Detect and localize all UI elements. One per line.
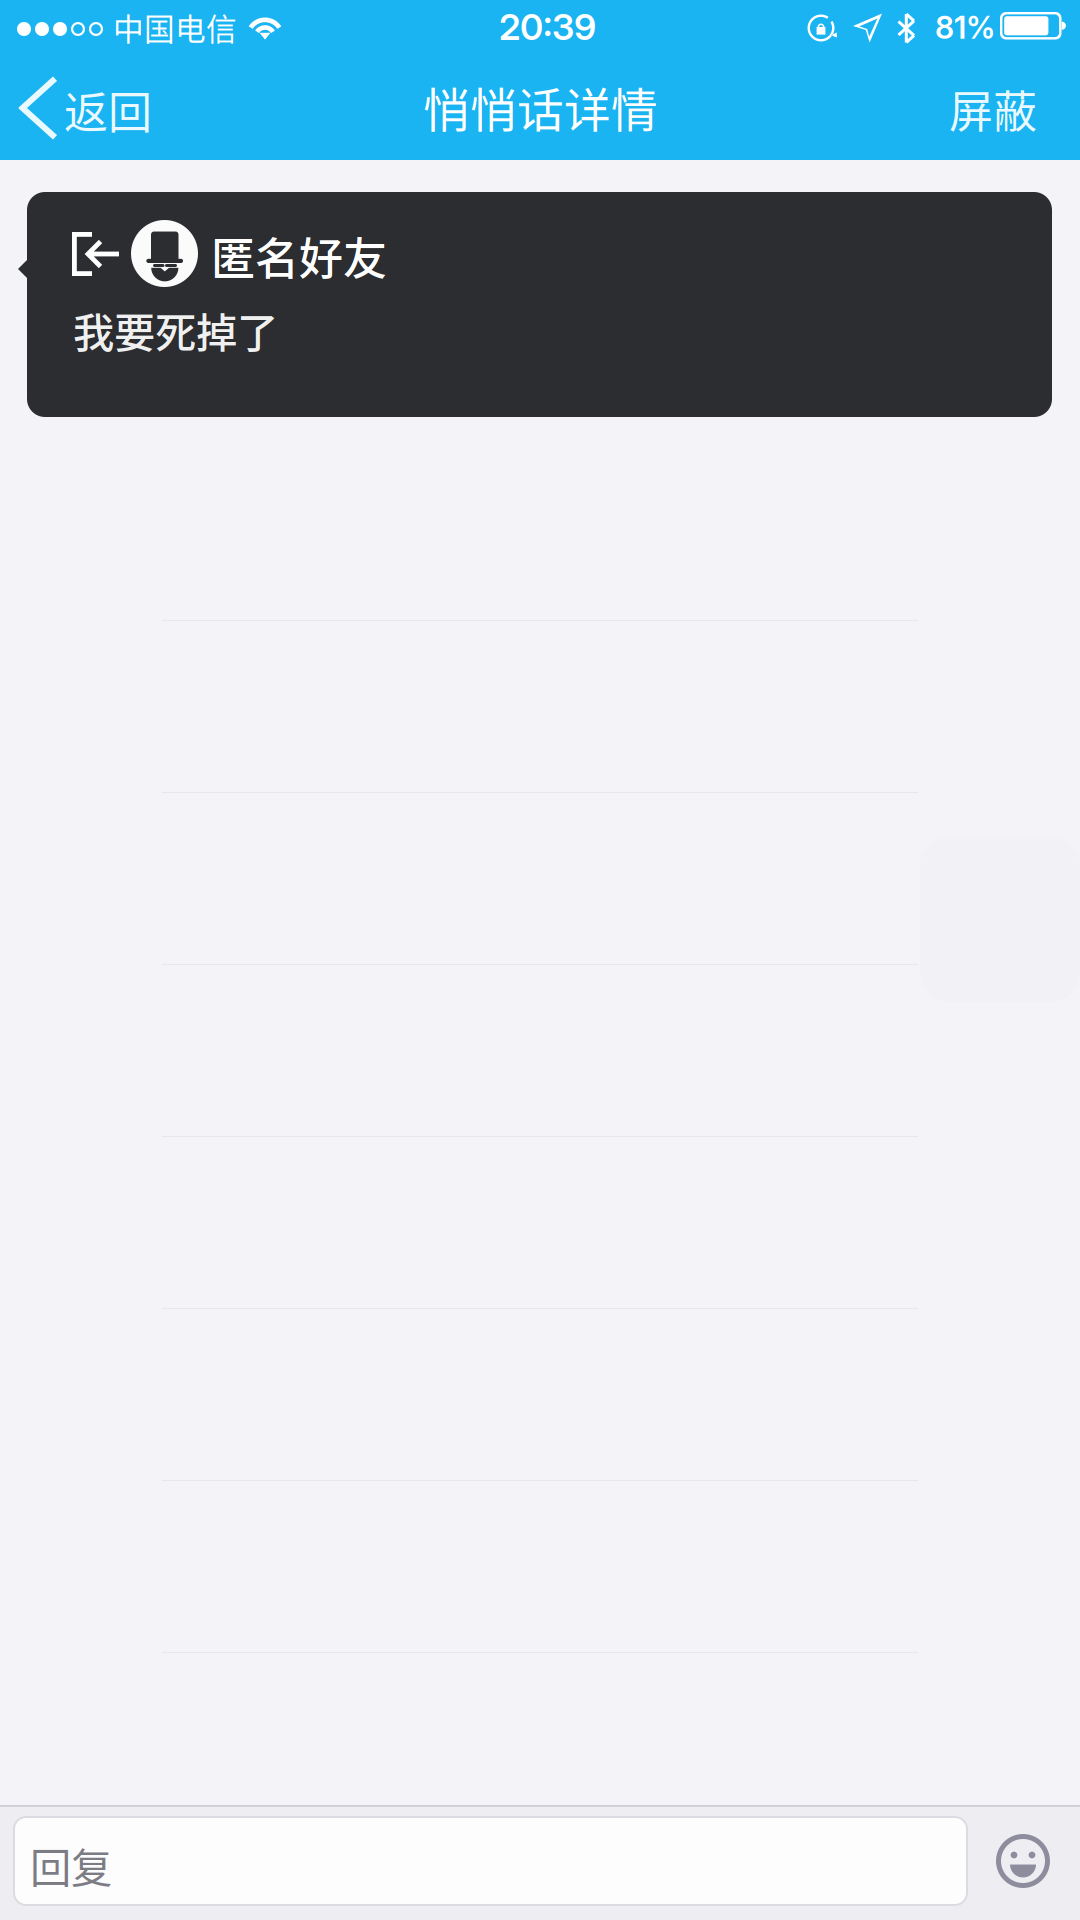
button[interactable]: 回复 [14, 1817, 967, 1905]
staticText: 返回 [64, 78, 152, 142]
staticText: 悄悄话详情 [423, 73, 658, 141]
staticText: 20:39 [499, 5, 596, 49]
button[interactable]: 屏蔽 [900, 58, 1060, 158]
staticText: 回复 [30, 1835, 112, 1895]
staticText: 81% [935, 9, 995, 46]
button[interactable]: Emoji [970, 1817, 1076, 1905]
button[interactable]: 返回 [0, 58, 190, 158]
staticText: 匿名好友 [211, 224, 387, 288]
staticText: 我要死掉了 [73, 300, 278, 360]
staticText: 中国电信 [113, 5, 237, 49]
staticText: 屏蔽 [949, 77, 1037, 141]
